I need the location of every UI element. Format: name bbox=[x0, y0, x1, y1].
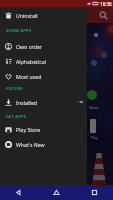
staticText: SHOW APPS bbox=[6, 28, 32, 33]
button[interactable]: Search bbox=[97, 9, 110, 22]
button[interactable]: Back bbox=[0, 185, 37, 200]
staticText: Play bbox=[91, 135, 98, 140]
button[interactable]: What's New bbox=[0, 137, 87, 151]
button[interactable]: Home bbox=[37, 185, 75, 200]
staticText: FILTERS bbox=[6, 86, 23, 91]
button[interactable]: Own order bbox=[0, 39, 87, 53]
staticText: News bbox=[89, 105, 99, 110]
staticText: Play Store bbox=[16, 126, 41, 133]
staticText: Uninstall bbox=[16, 12, 38, 19]
button[interactable]: Most used bbox=[0, 69, 87, 83]
button[interactable]: Play Store bbox=[0, 122, 87, 136]
staticText: Most used bbox=[16, 73, 42, 80]
button[interactable]: Recents bbox=[75, 185, 113, 200]
staticText: Own order bbox=[16, 43, 43, 50]
button[interactable]: Uninstall bbox=[0, 8, 87, 22]
staticText: 10:36 bbox=[100, 1, 112, 7]
staticText: GET APPS bbox=[6, 114, 27, 119]
button[interactable]: Installed bbox=[0, 95, 87, 109]
staticText: What's New bbox=[16, 141, 45, 148]
button[interactable]: Alphabetical bbox=[0, 54, 87, 68]
staticText: Installed bbox=[16, 99, 38, 106]
staticText: Alphabetical bbox=[16, 58, 47, 65]
